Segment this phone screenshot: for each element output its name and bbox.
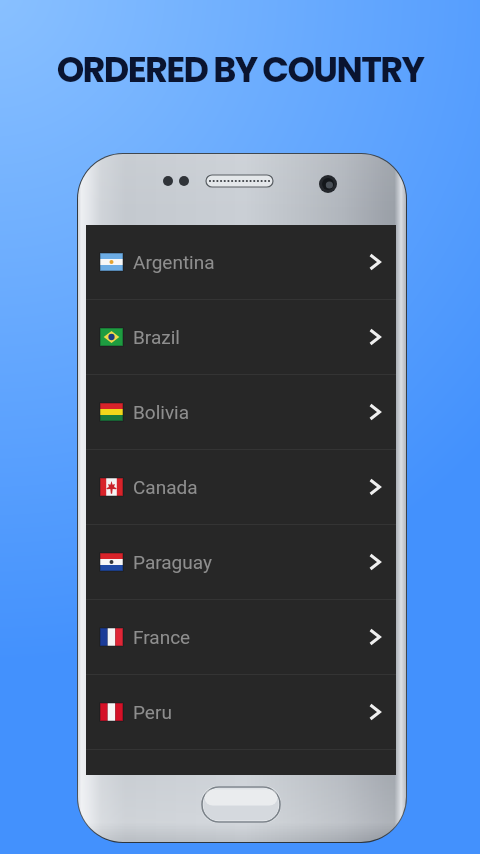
other: Home bbox=[200, 785, 282, 824]
button[interactable]: Bolivia bbox=[86, 375, 396, 449]
other: Open bbox=[368, 254, 382, 270]
other: Open bbox=[368, 629, 382, 645]
button[interactable]: Canada bbox=[86, 450, 396, 524]
button[interactable]: France bbox=[86, 600, 396, 674]
other: Open bbox=[368, 404, 382, 420]
staticText: Brazil bbox=[133, 326, 180, 348]
staticText: Paraguay bbox=[133, 551, 212, 573]
staticText: Argentina bbox=[133, 251, 215, 273]
button[interactable]: Argentina bbox=[86, 225, 396, 299]
button[interactable]: Brazil bbox=[86, 300, 396, 374]
staticText: France bbox=[133, 626, 191, 648]
staticText: Canada bbox=[133, 476, 198, 498]
other: Open bbox=[368, 329, 382, 345]
button[interactable]: Peru bbox=[86, 675, 396, 749]
staticText: Bolivia bbox=[133, 401, 190, 423]
other: Open bbox=[368, 704, 382, 720]
staticText: Peru bbox=[133, 701, 172, 723]
button[interactable]: Paraguay bbox=[86, 525, 396, 599]
other: Open bbox=[368, 479, 382, 495]
other: Open bbox=[368, 554, 382, 570]
staticText: ORDERED BY COUNTRY bbox=[0, 45, 480, 94]
